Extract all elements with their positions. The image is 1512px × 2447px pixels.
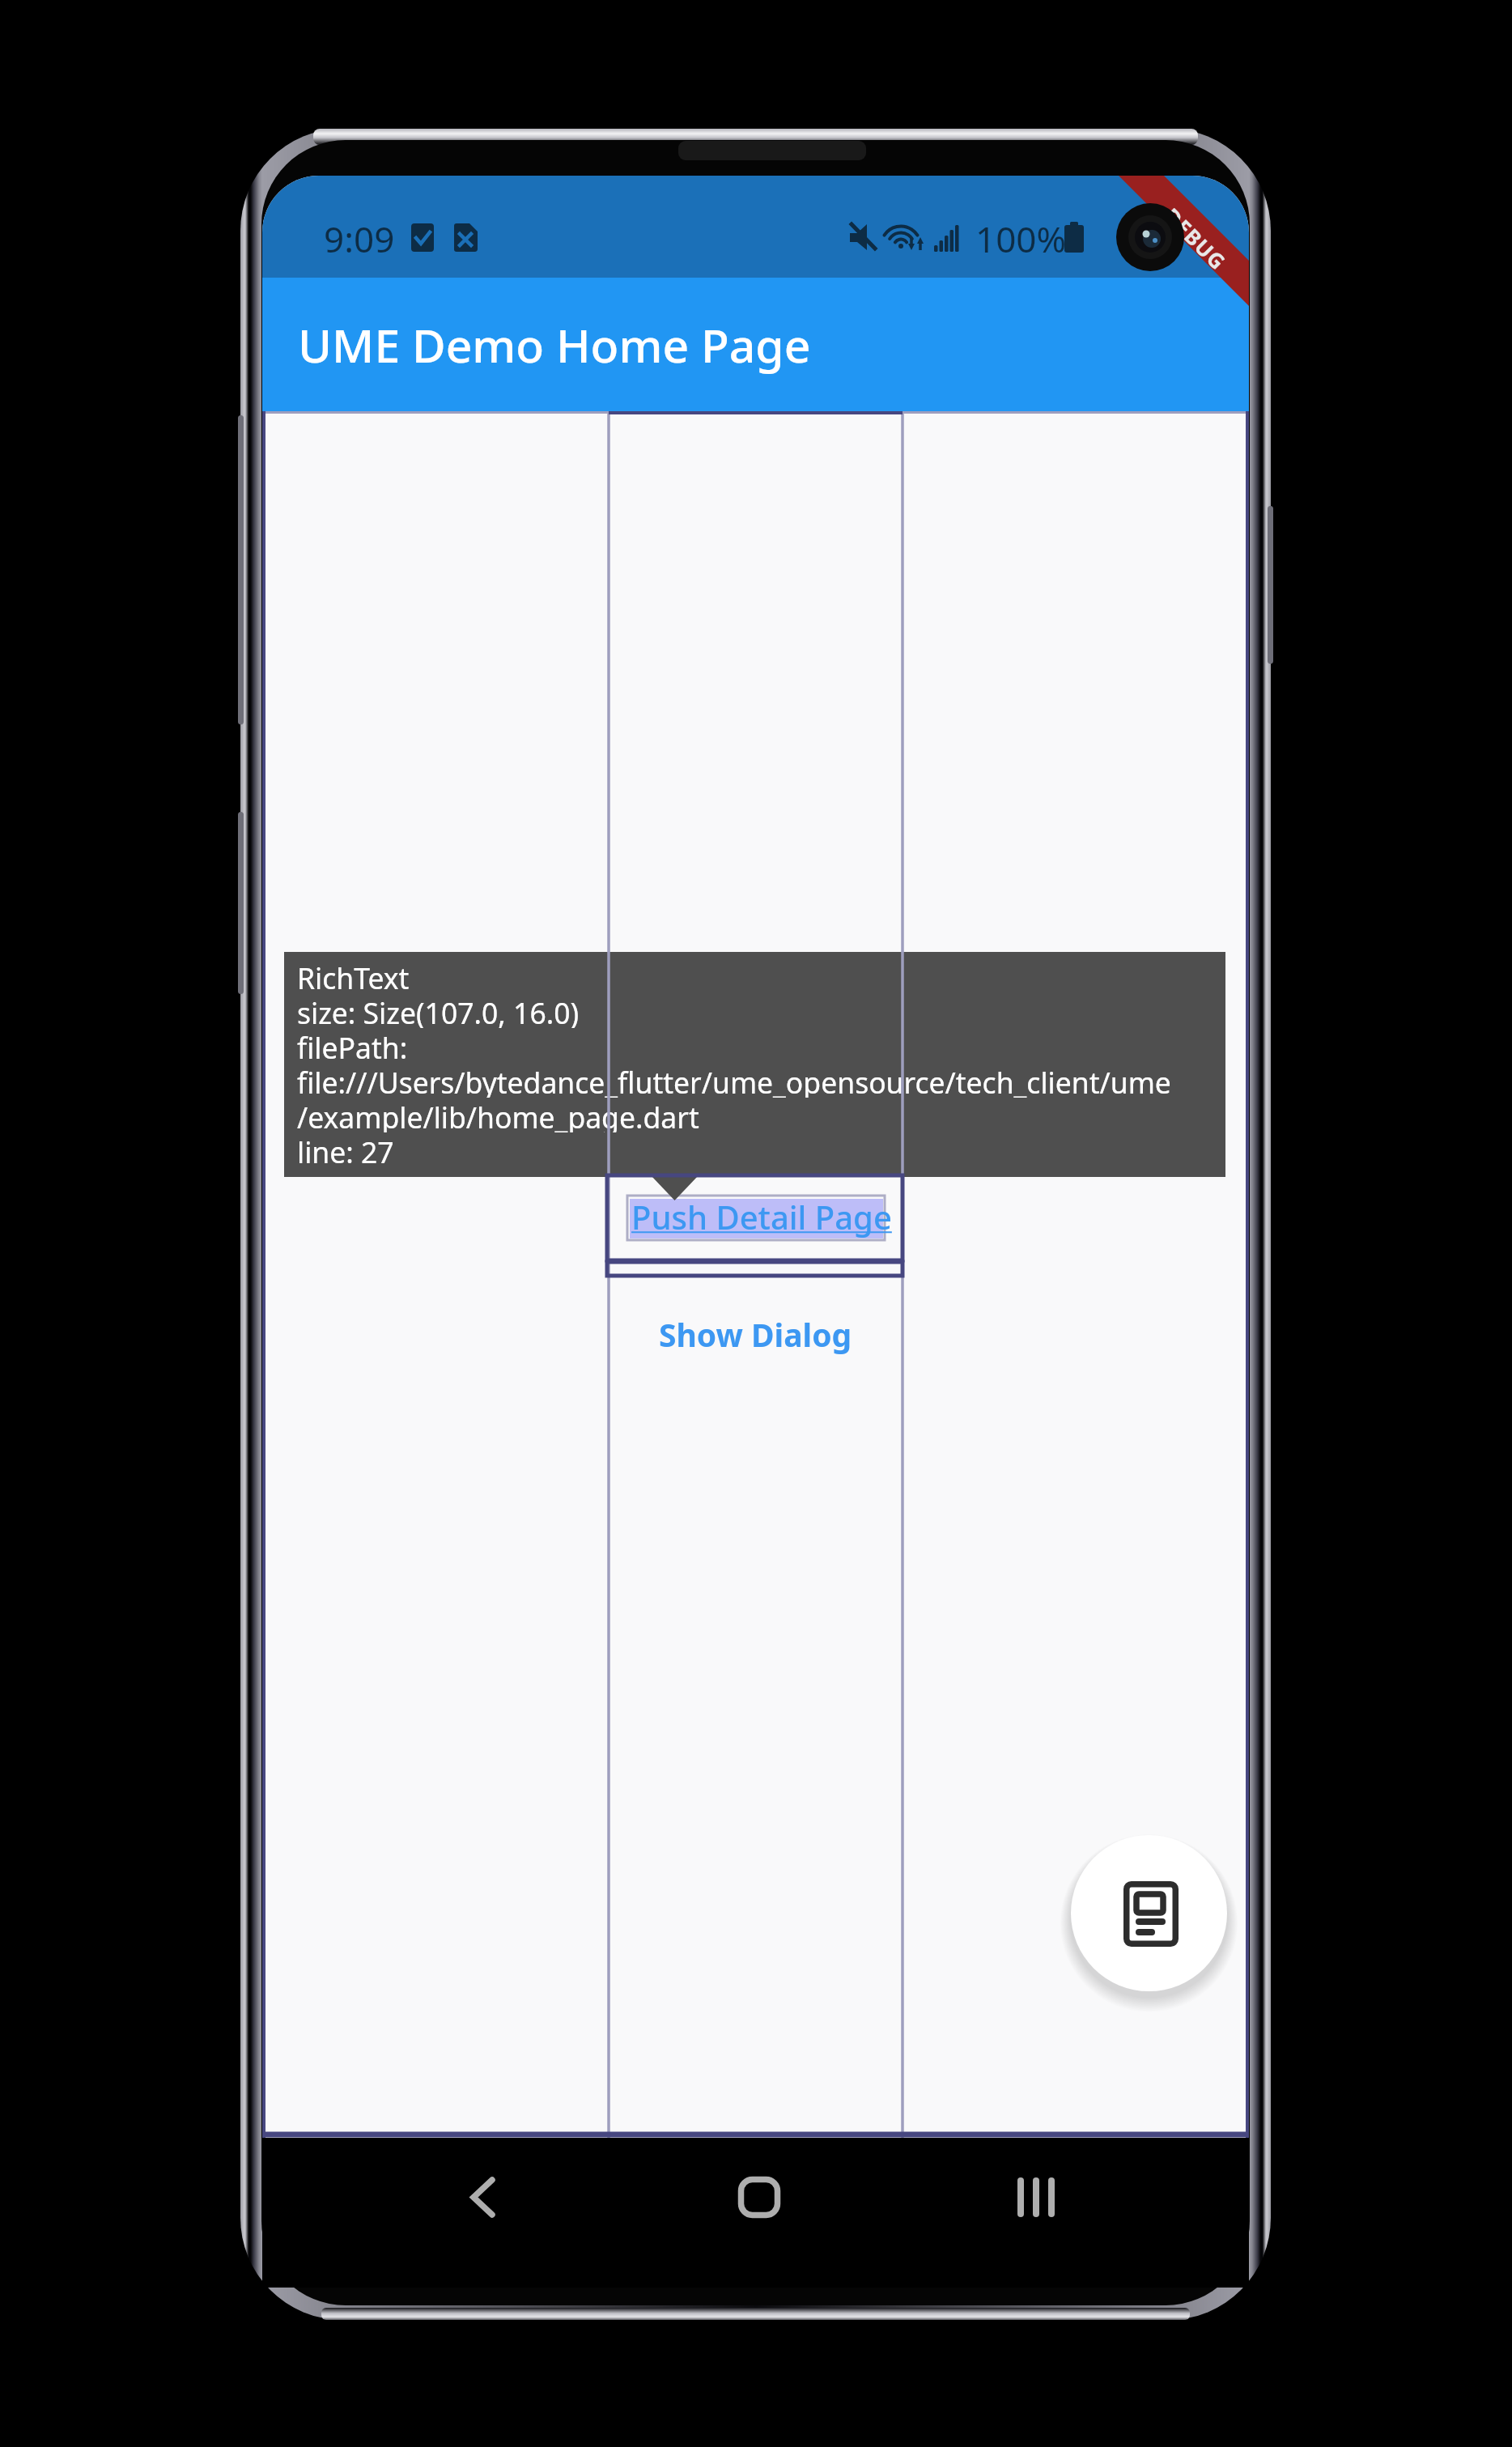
staticText: Push Detail Page: [631, 1195, 892, 1238]
button[interactable]: Show Dialog: [609, 1295, 903, 1373]
button[interactable]: UME Demo Home Page: [262, 278, 1249, 411]
staticText: UME Demo Home Page: [298, 313, 811, 376]
staticText: 9:09: [324, 215, 395, 263]
staticText: Show Dialog: [659, 1313, 852, 1356]
button[interactable]: Push Detail Page: [607, 1175, 903, 1260]
button[interactable]: Home: [711, 2148, 808, 2245]
staticText: RichText: [297, 958, 410, 993]
button[interactable]: Open UME inspector: [1071, 1835, 1227, 1991]
staticText: /example/lib/home_page.dart: [297, 1098, 699, 1132]
button[interactable]: Recent apps: [987, 2148, 1085, 2245]
staticText: line: 27: [297, 1132, 394, 1167]
staticText: file:///Users/bytedance_flutter/ume_open…: [297, 1063, 1171, 1098]
staticText: DEBUG: [1158, 201, 1233, 276]
staticText: size: Size(107.0, 16.0): [297, 993, 580, 1028]
staticText: 100%: [975, 215, 1067, 263]
staticText: filePath:: [297, 1028, 408, 1063]
button[interactable]: Back: [434, 2148, 531, 2245]
